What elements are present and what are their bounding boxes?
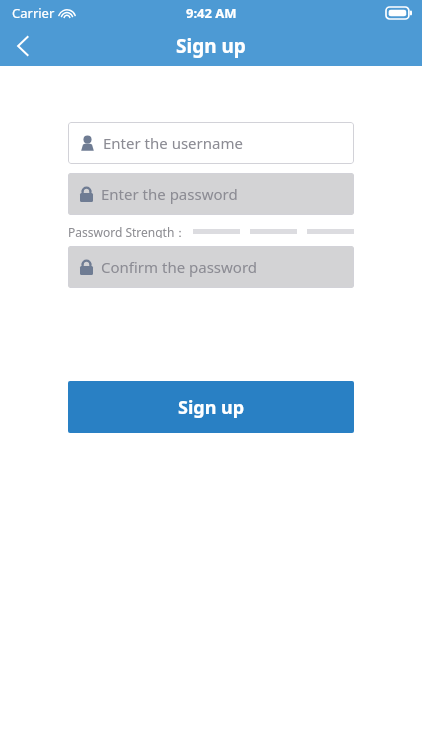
staticText: Sign up (178, 395, 245, 420)
button[interactable]: Enter the username (68, 122, 354, 164)
staticText: Password Strength： (68, 224, 187, 238)
button[interactable]: Enter the password (68, 173, 354, 215)
staticText: Sign up (176, 33, 246, 59)
staticText: Carrier (12, 4, 55, 22)
staticText: 9:42 AM (186, 4, 237, 22)
staticText: Enter the password (101, 184, 238, 204)
staticText: Enter the username (103, 133, 243, 153)
button[interactable]: Confirm the password (68, 246, 354, 288)
staticText: Confirm the password (101, 257, 258, 277)
button[interactable]: Back (0, 26, 46, 66)
button[interactable]: Sign up (68, 381, 354, 433)
